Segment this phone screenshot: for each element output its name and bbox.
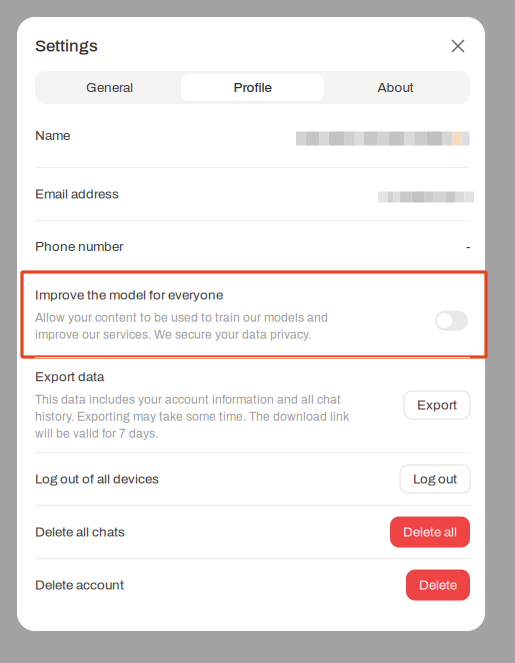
staticText: Log out of all devices xyxy=(35,472,159,486)
staticText: Delete all xyxy=(403,525,457,539)
button[interactable]: General xyxy=(38,74,181,101)
staticText: General xyxy=(86,80,133,95)
button[interactable]: About xyxy=(324,74,467,101)
button[interactable]: Log out xyxy=(400,465,470,493)
staticText: Allow your content to be used to train o… xyxy=(35,311,328,341)
staticText: Email address xyxy=(35,187,119,201)
staticText: Export data xyxy=(35,370,104,384)
staticText: Delete all chats xyxy=(35,525,125,539)
staticText: Delete account xyxy=(35,578,124,592)
staticText: Name xyxy=(35,128,70,143)
staticText: Phone number xyxy=(35,239,123,254)
staticText: - xyxy=(466,239,470,254)
staticText: About xyxy=(377,80,413,95)
button[interactable]: Delete xyxy=(406,569,470,600)
staticText: Export xyxy=(417,398,457,412)
button[interactable]: Close xyxy=(446,34,470,58)
staticText: Profile xyxy=(233,80,271,95)
button[interactable]: Improve the model for everyone xyxy=(435,311,468,331)
staticText: Settings xyxy=(35,37,98,55)
staticText: Log out xyxy=(413,472,457,486)
staticText: This data includes your account informat… xyxy=(35,393,349,440)
button[interactable]: Export xyxy=(404,391,470,419)
button[interactable]: Profile xyxy=(181,74,324,101)
staticText: Improve the model for everyone xyxy=(35,288,223,302)
button[interactable]: Delete all xyxy=(390,516,470,547)
staticText: Delete xyxy=(419,578,457,592)
